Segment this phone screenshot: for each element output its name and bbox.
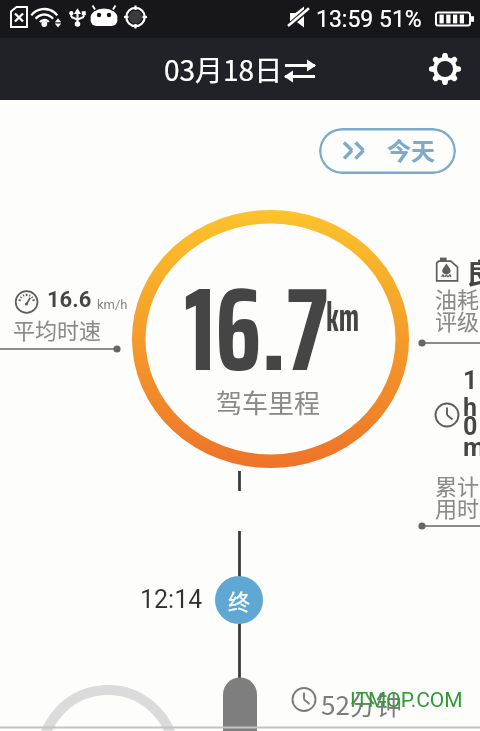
staticText: 驾车里程 <box>216 383 321 421</box>
staticText: 16.6 <box>47 287 92 313</box>
staticText: 良 <box>466 252 480 293</box>
staticText: 终 <box>228 584 251 616</box>
button[interactable]: Settings <box>421 45 469 93</box>
staticText: km/h <box>97 297 128 312</box>
staticText: 16.7 <box>184 237 328 421</box>
staticText: 03月18日 <box>164 49 283 90</box>
staticText: km <box>326 284 360 349</box>
staticText: 累计 <box>435 469 480 501</box>
staticText: h <box>463 393 478 422</box>
staticText: 油耗 <box>435 282 480 314</box>
staticText: ITMOP.COM <box>350 688 463 713</box>
staticText: 用时 <box>435 491 480 523</box>
staticText: 0 <box>463 412 478 441</box>
staticText: 评级 <box>435 304 480 336</box>
staticText: 13:59 51% <box>316 6 422 33</box>
staticText: 12:14 <box>140 585 203 614</box>
button[interactable]: 终 <box>215 576 263 624</box>
staticText: 1 <box>463 366 478 395</box>
button[interactable]: 今天 <box>319 128 456 174</box>
staticText: 52分钟 <box>321 685 402 723</box>
staticText: m <box>463 433 480 462</box>
button[interactable]: 03月18日 <box>164 49 317 90</box>
staticText: 平均时速 <box>13 313 102 345</box>
staticText: 今天 <box>387 132 435 167</box>
